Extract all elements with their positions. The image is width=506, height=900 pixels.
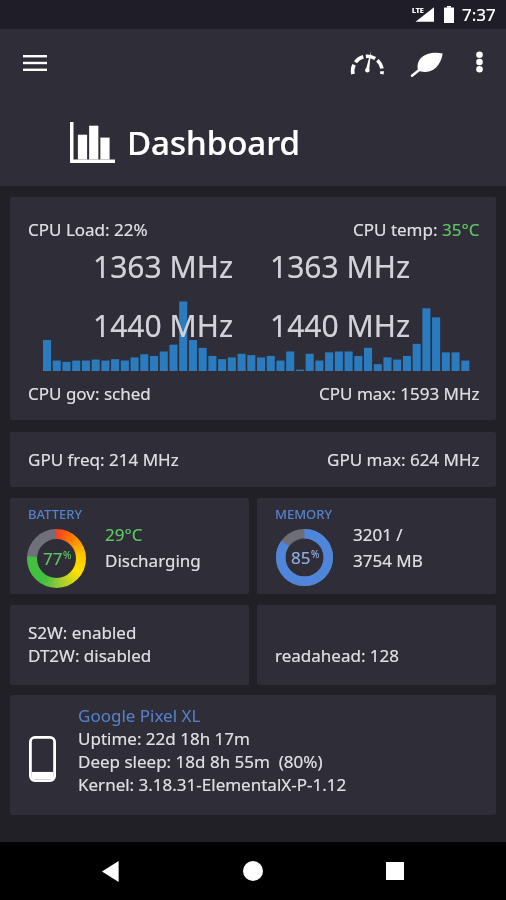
staticText: CPU temp:	[353, 218, 442, 241]
staticText: S2W: enabled	[28, 621, 137, 644]
button[interactable]: Navigation menu	[11, 39, 59, 87]
staticText: %	[311, 547, 320, 561]
staticText: GPU max: 624 MHz	[327, 448, 480, 471]
staticText: 1363 MHz	[270, 246, 410, 287]
staticText: 35°C	[442, 218, 480, 241]
button[interactable]: MEMORY	[257, 498, 496, 594]
button[interactable]: GPU freq: 214 MHz	[10, 432, 496, 487]
staticText: 29°C	[105, 523, 143, 546]
staticText: Uptime: 22d 18h 17m	[78, 727, 250, 750]
staticText: 1440 MHz	[270, 305, 410, 346]
button[interactable]: Back	[87, 842, 135, 900]
button[interactable]: CPU monitor	[344, 39, 392, 87]
staticText: Discharging	[105, 549, 201, 572]
button[interactable]: Google Pixel XL	[10, 695, 496, 815]
button[interactable]: BATTERY	[10, 498, 249, 594]
button[interactable]: More options	[455, 38, 503, 86]
staticText: BATTERY	[28, 505, 83, 523]
staticText: Google Pixel XL	[78, 704, 201, 727]
staticText: 3754 MB	[353, 549, 423, 572]
staticText: 1363 MHz	[93, 246, 233, 287]
staticText: Dashboard	[127, 120, 300, 165]
button[interactable]: Home	[229, 842, 277, 900]
button[interactable]: CPU Load: 22%	[10, 197, 496, 420]
staticText: Deep sleep: 18d 8h 55m (80%)	[78, 750, 323, 773]
staticText: DT2W: disabled	[28, 644, 152, 667]
staticText: Kernel: 3.18.31-ElementalX-P-1.12	[78, 773, 347, 796]
staticText: LTE	[412, 6, 424, 16]
button[interactable]: readahead: 128	[257, 605, 496, 685]
staticText: CPU max: 1593 MHz	[319, 382, 480, 405]
button[interactable]: S2W: enabled	[10, 605, 249, 685]
button[interactable]: Recent apps	[371, 842, 419, 900]
staticText: 3201 /	[353, 523, 403, 546]
staticText: CPU Load: 22%	[28, 218, 148, 241]
staticText: 1440 MHz	[93, 305, 233, 346]
staticText: %	[63, 548, 72, 562]
button[interactable]: Battery saver	[403, 39, 451, 87]
staticText: 77	[43, 547, 63, 570]
staticText: readahead: 128	[275, 644, 400, 667]
staticText: 85	[291, 546, 311, 569]
staticText: CPU gov: sched	[28, 382, 151, 405]
staticText: 7:37	[462, 3, 496, 26]
staticText: MEMORY	[275, 505, 333, 523]
staticText: GPU freq: 214 MHz	[28, 448, 179, 471]
